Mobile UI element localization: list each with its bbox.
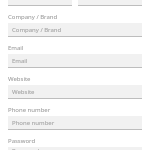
staticText: Email (8, 44, 24, 52)
staticText: Password (8, 137, 36, 145)
button[interactable]: Company / Brand (8, 23, 142, 37)
staticText: Phone number (8, 106, 51, 114)
button[interactable]: Phone number (8, 116, 142, 130)
staticText: Website (12, 88, 35, 96)
staticText: Email (12, 57, 28, 65)
button[interactable] (8, 0, 72, 6)
staticText: Website (8, 75, 31, 83)
button[interactable]: Website (8, 85, 142, 99)
staticText: Company / Brand (8, 13, 58, 21)
staticText: Company / Brand (12, 26, 62, 34)
button[interactable]: Email (8, 54, 142, 68)
staticText: Phone number (12, 119, 55, 127)
button[interactable]: Password (8, 147, 142, 150)
staticText: Password (12, 147, 40, 150)
button[interactable] (78, 0, 142, 6)
